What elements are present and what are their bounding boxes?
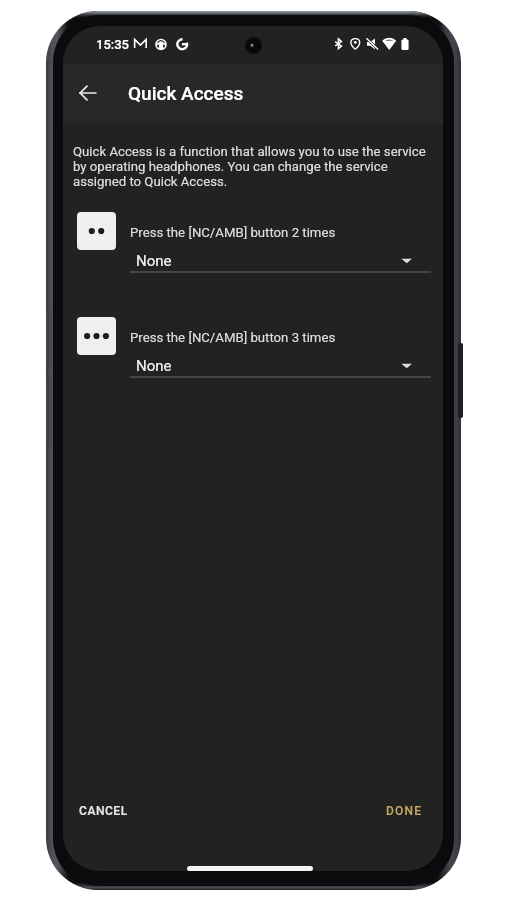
button[interactable]: DONE (376, 795, 433, 827)
button[interactable]: CANCEL (69, 795, 138, 827)
staticText: 15:35 (96, 37, 129, 52)
staticText: Press the [NC/AMB] button 3 times (130, 330, 336, 345)
staticText: Quick Access (128, 82, 244, 104)
button[interactable]: Back (64, 69, 112, 117)
staticText: Press the [NC/AMB] button 2 times (130, 225, 336, 240)
staticText: Quick Access is a function that allows y… (73, 144, 430, 189)
button[interactable]: None, select service (130, 353, 431, 381)
staticText: None (136, 357, 172, 375)
staticText: None (136, 252, 172, 270)
button[interactable]: None, select service (130, 248, 431, 276)
staticText: DONE (386, 804, 423, 818)
staticText: CANCEL (79, 804, 128, 818)
